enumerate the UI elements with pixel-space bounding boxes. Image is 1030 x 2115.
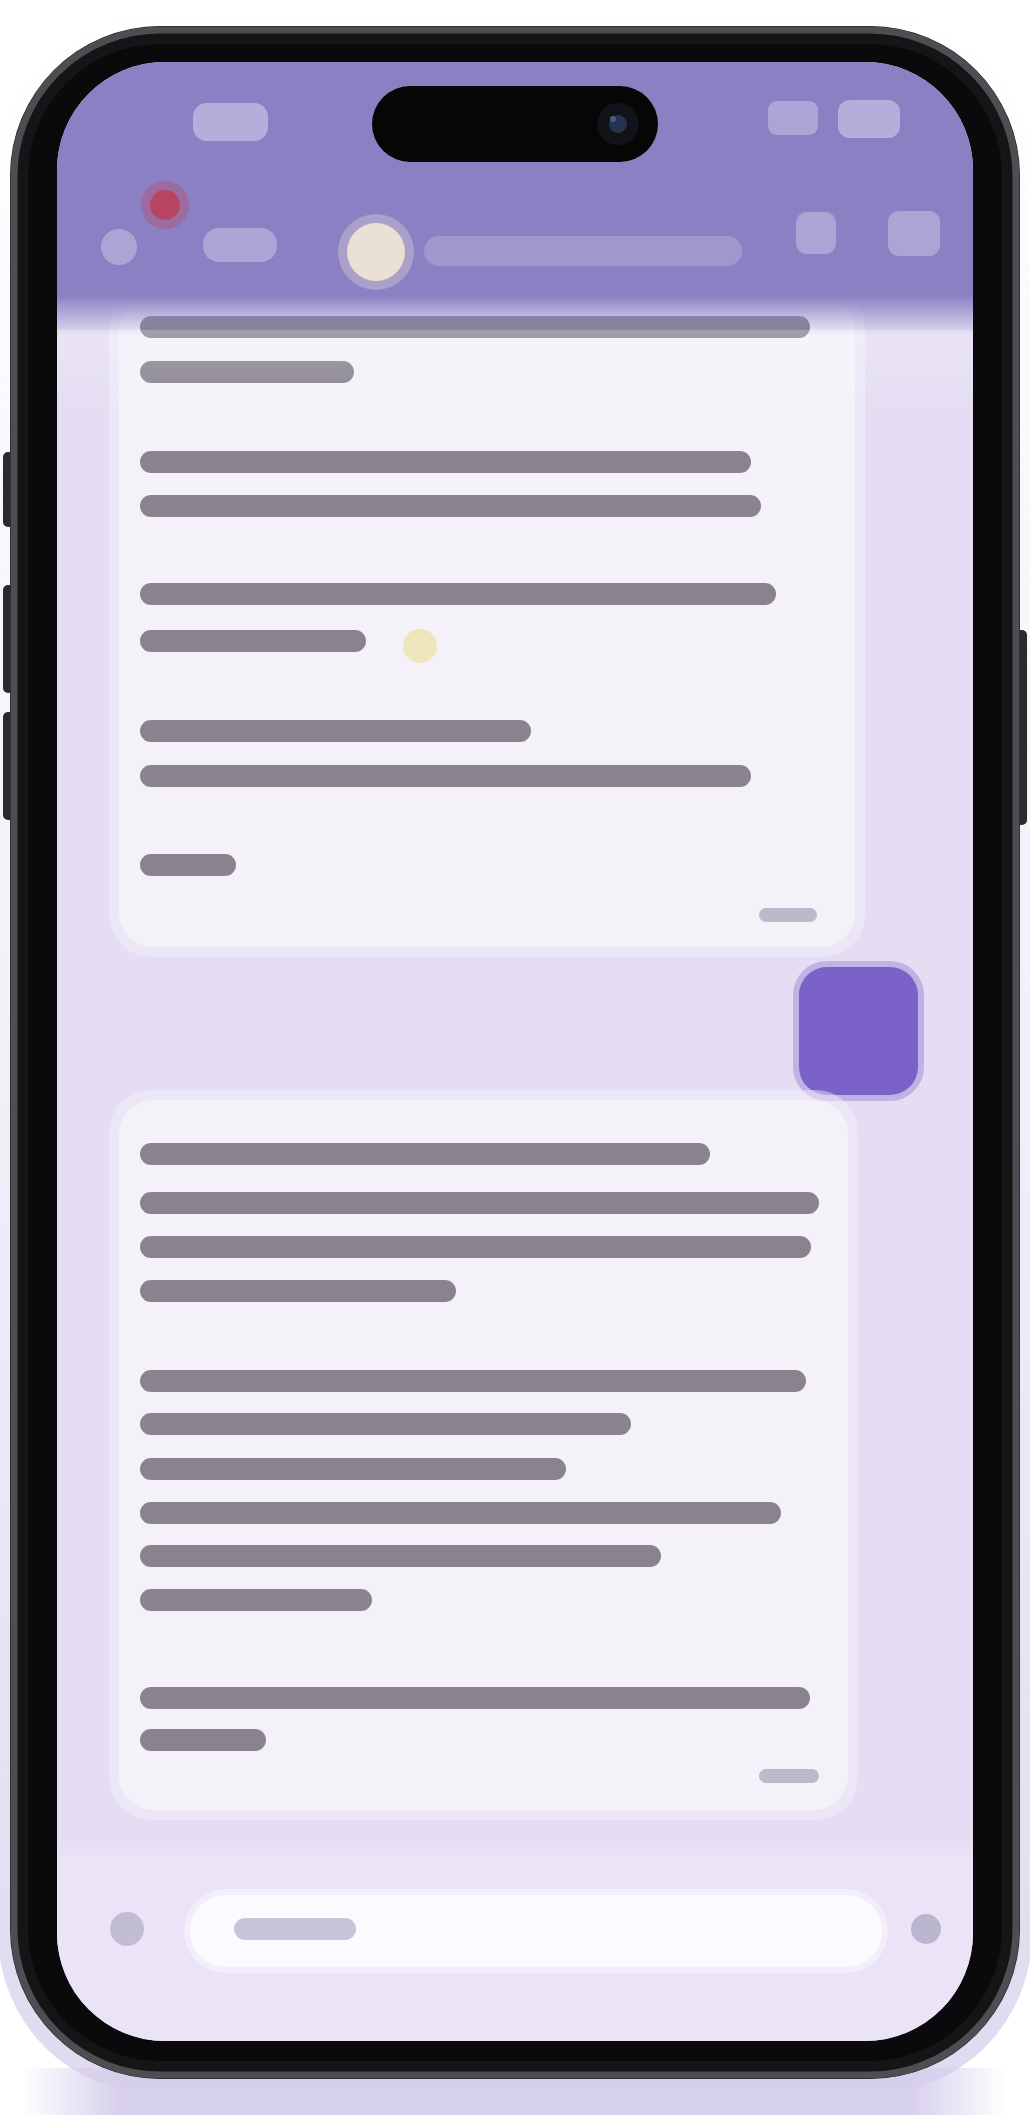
button[interactable] xyxy=(95,222,147,274)
button[interactable] xyxy=(786,202,846,262)
button[interactable] xyxy=(899,1902,953,1956)
button[interactable] xyxy=(100,1902,154,1956)
button[interactable] xyxy=(190,1895,882,1967)
button[interactable] xyxy=(878,201,944,265)
button[interactable] xyxy=(799,967,918,1095)
button[interactable] xyxy=(340,218,750,284)
